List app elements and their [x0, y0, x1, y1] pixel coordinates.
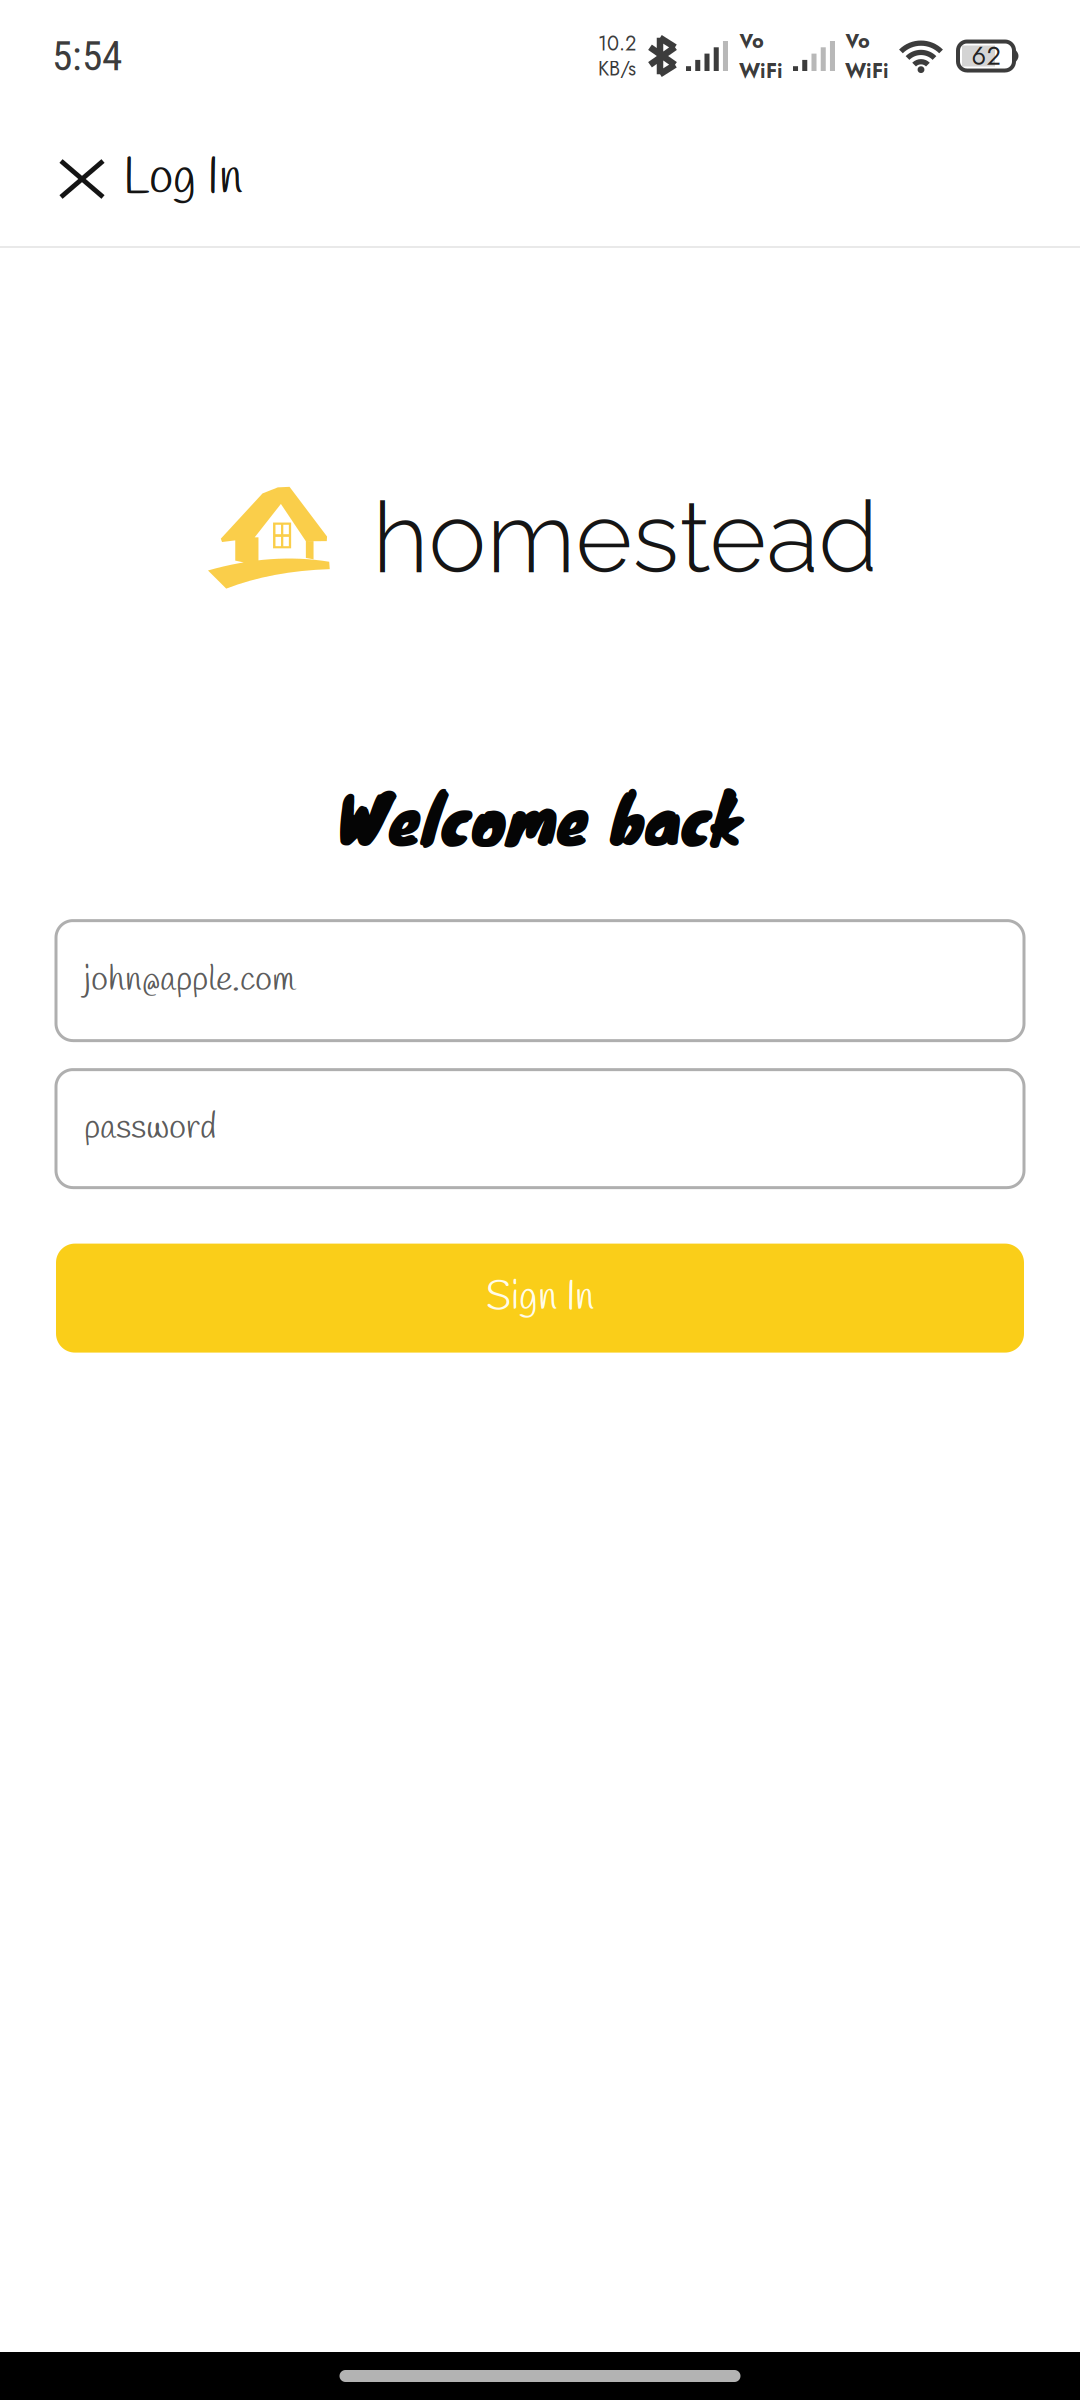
staticText: Vo	[739, 27, 764, 55]
staticText: 10.2	[598, 29, 636, 58]
staticText: homestead	[372, 481, 878, 595]
staticText: WiFi	[845, 56, 889, 85]
staticText: Sign In	[486, 1271, 594, 1325]
staticText: KB/s	[598, 54, 636, 83]
staticText: password	[84, 1105, 216, 1152]
button[interactable]: john@apple.com	[56, 921, 1024, 1041]
staticText: Vo	[845, 27, 870, 55]
staticText: 5:54	[52, 32, 122, 80]
button[interactable]: password	[56, 1070, 1024, 1188]
staticText: john@apple.com	[84, 957, 295, 1004]
staticText: Log In	[123, 146, 242, 212]
staticText: WiFi	[739, 56, 783, 85]
button[interactable]: Sign In	[56, 1244, 1024, 1353]
button[interactable]: Log In	[0, 112, 272, 246]
staticText: 62	[971, 38, 1000, 74]
staticText: Welcome back	[337, 765, 743, 869]
